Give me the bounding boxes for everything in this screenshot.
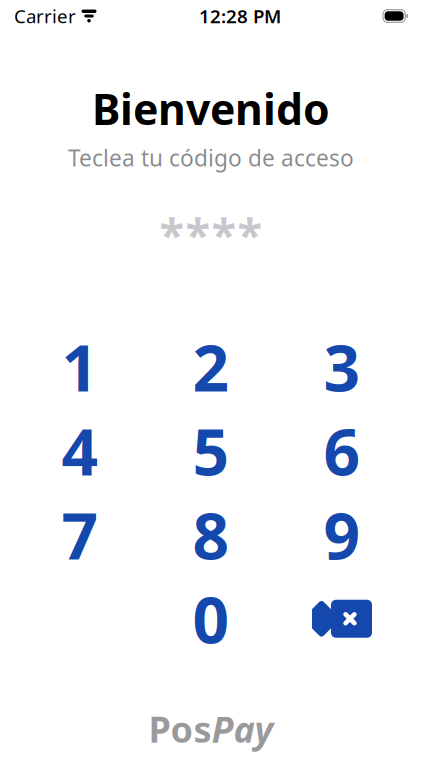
staticText: Pos bbox=[148, 705, 211, 753]
button[interactable]: 5 bbox=[151, 409, 271, 493]
staticText: 3 bbox=[323, 324, 360, 409]
staticText: 12:28 PM bbox=[199, 4, 281, 28]
button[interactable]: 0 bbox=[151, 577, 271, 661]
staticText: * bbox=[159, 204, 184, 264]
staticText: 6 bbox=[323, 408, 360, 493]
button[interactable]: 9 bbox=[282, 493, 402, 577]
button[interactable]: 6 bbox=[282, 409, 402, 493]
staticText: 1 bbox=[61, 324, 98, 409]
staticText: Pay bbox=[211, 705, 273, 753]
staticText: Teclea tu código de acceso bbox=[68, 143, 354, 173]
button[interactable]: 1 bbox=[20, 325, 140, 409]
staticText: Bienvenido bbox=[92, 80, 330, 137]
staticText: 0 bbox=[192, 576, 229, 661]
button[interactable]: 4 bbox=[20, 409, 140, 493]
button[interactable]: 7 bbox=[20, 493, 140, 577]
button[interactable]: 3 bbox=[282, 325, 402, 409]
staticText: 8 bbox=[192, 492, 229, 577]
staticText: 4 bbox=[61, 408, 98, 493]
staticText: Carrier bbox=[14, 4, 76, 28]
staticText: * bbox=[185, 204, 210, 264]
button[interactable]: Delete bbox=[282, 577, 402, 661]
staticText: 7 bbox=[61, 492, 98, 577]
button[interactable]: 8 bbox=[151, 493, 271, 577]
staticText: 9 bbox=[323, 492, 360, 577]
button[interactable]: 2 bbox=[151, 325, 271, 409]
staticText: * bbox=[211, 204, 236, 264]
staticText: 5 bbox=[192, 408, 229, 493]
staticText: 2 bbox=[192, 324, 229, 409]
staticText: * bbox=[237, 204, 262, 264]
